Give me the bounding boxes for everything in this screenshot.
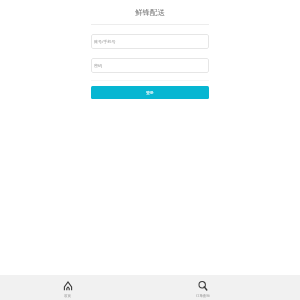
staticText: 鲜锋配送 [135,8,165,17]
button[interactable]: 密码 [91,58,209,73]
other: 首页 [63,281,73,291]
button[interactable]: 账号/手机号 [91,34,209,49]
staticText: 首页 [64,294,71,298]
other: 订单查询 [198,281,208,291]
staticText: 账号/手机号 [94,39,116,44]
button[interactable]: 首页 [0,275,135,300]
staticText: 密码 [94,63,102,68]
button[interactable]: 登录 [91,86,209,99]
staticText: 订单查询 [196,294,210,298]
button[interactable]: 订单查询 [135,275,270,300]
staticText: 登录 [146,90,154,95]
